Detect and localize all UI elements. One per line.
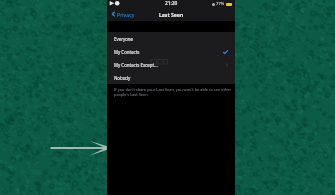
button[interactable]: My Contacts Except... [107,58,235,71]
staticText: 77% [216,1,225,7]
staticText: My Contacts [114,49,140,55]
button[interactable]: Nobody [107,71,235,84]
button[interactable]: My Contacts [107,45,235,58]
staticText: Last Seen [159,11,184,18]
button[interactable]: Privacy [112,8,135,20]
staticText: Everyone [114,36,134,42]
staticText: Privacy [117,11,135,18]
staticText: If you don't share your Last Seen, you w… [114,87,232,97]
other: Pointer arrow [0,0,335,195]
staticText: 21:20 [165,0,178,7]
staticText: Nobody [114,75,131,81]
staticText: My Contacts Except... [114,62,158,68]
button[interactable]: Everyone [107,32,235,45]
